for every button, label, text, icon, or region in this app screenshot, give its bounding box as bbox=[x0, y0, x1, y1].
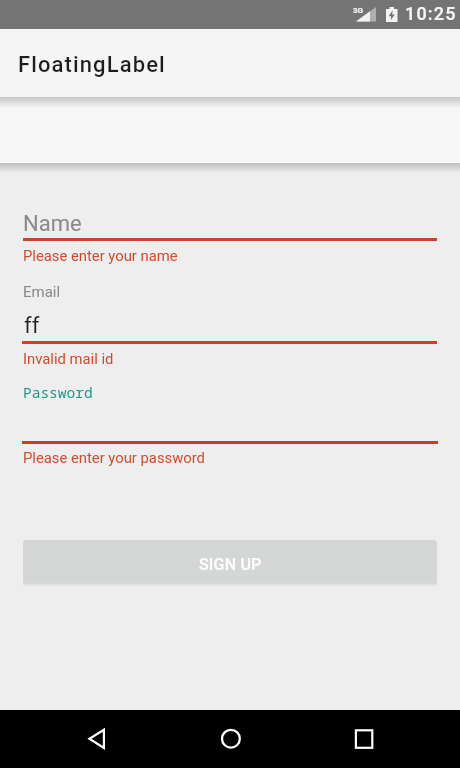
staticText: FloatingLabel bbox=[18, 52, 166, 78]
button[interactable] bbox=[73, 716, 118, 761]
staticText: Invalid mail id bbox=[23, 350, 114, 367]
button[interactable] bbox=[208, 716, 253, 761]
staticText: Name bbox=[23, 211, 82, 237]
button[interactable] bbox=[342, 716, 387, 761]
staticText: SIGN UP bbox=[199, 555, 262, 574]
staticText: Password bbox=[23, 382, 93, 402]
button[interactable]: SIGN UP bbox=[23, 540, 437, 583]
staticText: Please enter your password bbox=[23, 449, 205, 466]
staticText: 10:25 bbox=[405, 3, 457, 24]
staticText: ff bbox=[24, 313, 40, 339]
staticText: Email bbox=[23, 283, 61, 301]
button[interactable] bbox=[23, 403, 437, 444]
button[interactable] bbox=[23, 300, 437, 344]
staticText: Please enter your name bbox=[23, 247, 178, 264]
staticText: 3G bbox=[353, 6, 364, 15]
button[interactable] bbox=[23, 200, 437, 241]
